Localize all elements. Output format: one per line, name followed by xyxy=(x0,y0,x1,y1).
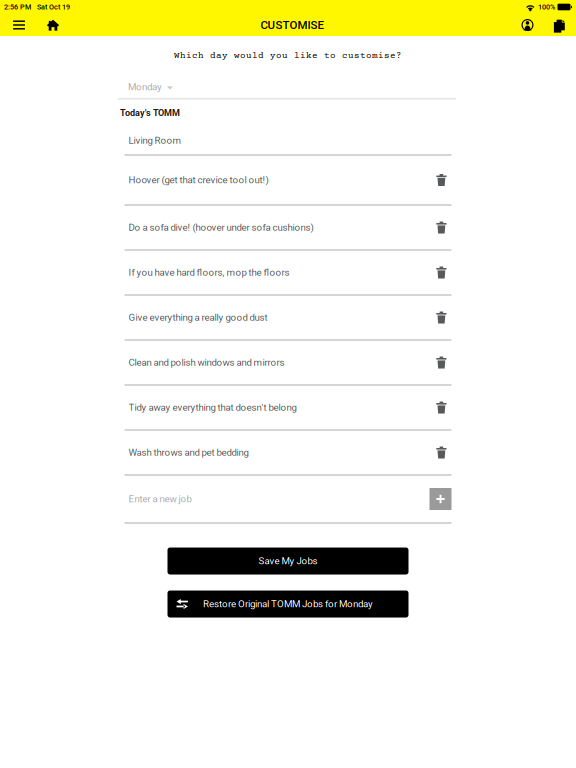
button[interactable]: Hoover (get that crevice tool out!) xyxy=(124,155,451,205)
staticText: Which day would you like to customise? xyxy=(174,51,402,61)
button[interactable]: Menu xyxy=(3,14,35,36)
button[interactable]: Tidy away everything that doesn't belong xyxy=(124,385,451,430)
staticText: Sat Oct 19 xyxy=(31,3,70,11)
button[interactable]: If you have hard floors, mop the floors xyxy=(124,250,451,295)
staticText: If you have hard floors, mop the floors xyxy=(128,267,289,278)
staticText: Save My Jobs xyxy=(258,555,317,567)
button[interactable]: Restore Original TOMM Jobs for Monday xyxy=(167,590,408,617)
staticText: Monday xyxy=(128,81,162,93)
staticText: Clean and polish windows and mirrors xyxy=(128,357,284,368)
staticText: 2:56 PM xyxy=(4,3,31,11)
staticText: Today's TOMM xyxy=(120,108,180,118)
button[interactable]: Documents xyxy=(542,14,574,36)
button[interactable]: Add job xyxy=(429,488,451,510)
button[interactable]: Wash throws and pet bedding xyxy=(124,430,451,475)
button[interactable]: Save My Jobs xyxy=(167,547,408,574)
staticText: Enter a new job xyxy=(128,493,191,505)
staticText: CUSTOMISE xyxy=(260,18,323,32)
staticText: Living Room xyxy=(128,135,181,146)
staticText: Tidy away everything that doesn't belong xyxy=(128,402,296,413)
staticText: Restore Original TOMM Jobs for Monday xyxy=(203,598,373,610)
button[interactable]: Give everything a really good dust xyxy=(124,295,451,340)
button[interactable]: Do a sofa dive! (hoover under sofa cushi… xyxy=(124,205,451,250)
staticText: Give everything a really good dust xyxy=(128,312,267,323)
button[interactable]: Home xyxy=(35,14,71,36)
button[interactable]: Clean and polish windows and mirrors xyxy=(124,340,451,385)
staticText: 100% xyxy=(536,3,555,11)
button[interactable]: Account xyxy=(513,14,542,36)
staticText: Hoover (get that crevice tool out!) xyxy=(128,174,268,186)
staticText: Do a sofa dive! (hoover under sofa cushi… xyxy=(128,222,313,233)
staticText: Wash throws and pet bedding xyxy=(128,447,248,458)
